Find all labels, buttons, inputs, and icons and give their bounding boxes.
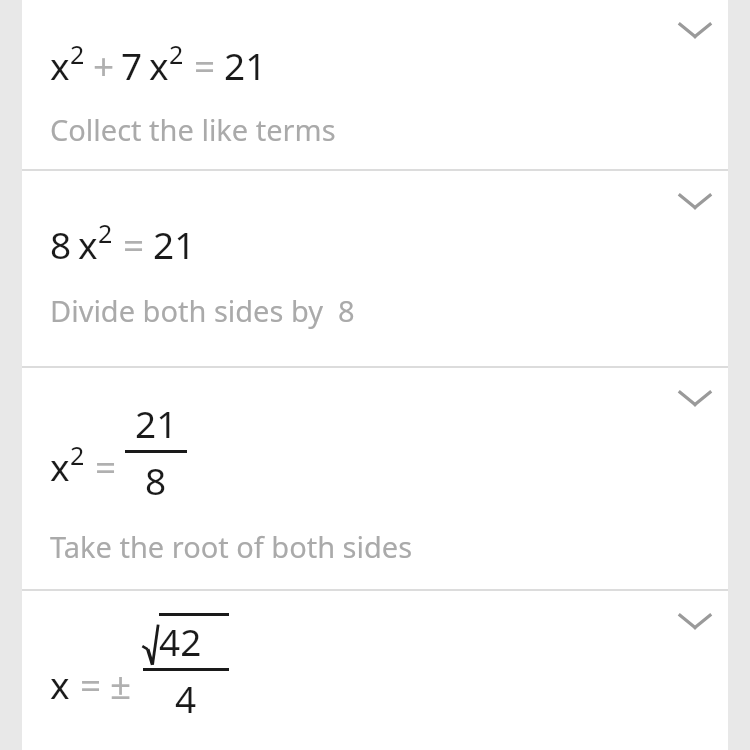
- staticText: =: [194, 40, 216, 90]
- button[interactable]: Expand step: [672, 375, 718, 421]
- staticText: =: [95, 441, 117, 491]
- staticText: 2: [70, 37, 85, 71]
- button[interactable]: Expand step: [672, 598, 718, 644]
- staticText: =: [123, 219, 145, 269]
- staticText: 2: [98, 216, 113, 250]
- button[interactable]: x: [22, 0, 728, 169]
- button[interactable]: Expand step: [672, 178, 718, 224]
- staticText: 2: [70, 438, 85, 472]
- staticText: Divide both sides by 8: [50, 291, 355, 330]
- button[interactable]: Expand step: [672, 7, 718, 53]
- staticText: 21: [135, 398, 178, 448]
- button[interactable]: 8: [22, 171, 728, 366]
- button[interactable]: x: [22, 368, 728, 589]
- staticText: 21: [153, 219, 196, 269]
- staticText: 8: [50, 219, 72, 269]
- staticText: 8: [145, 455, 167, 505]
- staticText: 7: [121, 40, 143, 90]
- staticText: x: [50, 40, 70, 90]
- staticText: x: [50, 441, 70, 491]
- staticText: 21: [224, 40, 267, 90]
- staticText: =: [80, 659, 102, 709]
- staticText: ±: [110, 659, 132, 709]
- staticText: 2: [169, 37, 184, 71]
- staticText: +: [93, 40, 115, 90]
- staticText: Collect the like terms: [50, 110, 336, 149]
- staticText: x: [78, 219, 98, 269]
- staticText: x: [149, 40, 169, 90]
- staticText: Take the root of both sides: [50, 527, 413, 566]
- staticText: 4: [175, 673, 197, 723]
- staticText: x: [50, 659, 70, 709]
- staticText: 42: [159, 616, 202, 666]
- button[interactable]: x: [22, 591, 728, 750]
